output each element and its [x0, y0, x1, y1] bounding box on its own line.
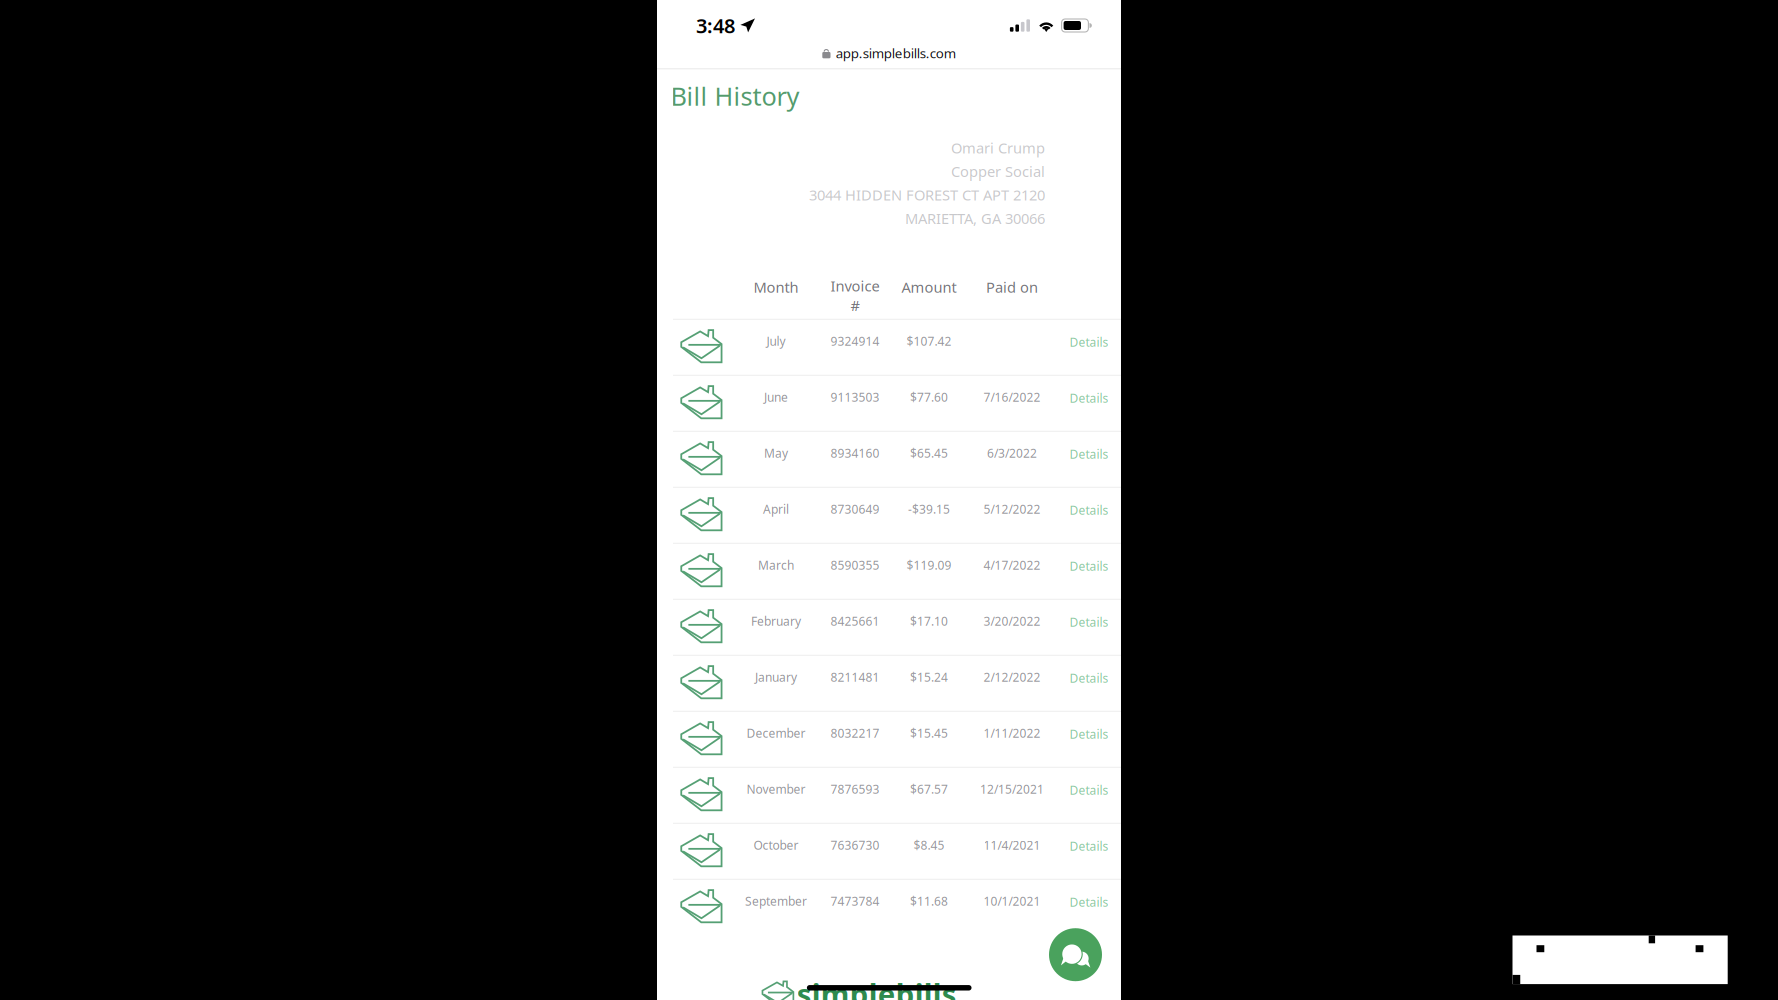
staticText: Details — [1069, 390, 1108, 406]
staticText: Bill History — [670, 79, 799, 113]
staticText: 3044 HIDDEN FOREST CT APT 2120 — [809, 185, 1045, 204]
staticText: $17.10 — [910, 613, 948, 629]
staticText: MARIETTA, GA 30066 — [905, 208, 1045, 228]
staticText: September — [745, 893, 807, 909]
staticText: 12/15/2021 — [980, 781, 1044, 797]
staticText: 3/20/2022 — [983, 613, 1040, 629]
staticText: Amount — [901, 277, 956, 297]
staticText: Details — [1069, 726, 1108, 742]
staticText: 2/12/2022 — [983, 669, 1040, 685]
button[interactable]: Open chat — [1049, 928, 1102, 981]
staticText: Details — [1069, 502, 1108, 518]
staticText: Paid on — [986, 277, 1038, 297]
button[interactable]: Details — [1057, 826, 1121, 866]
staticText: $119.09 — [906, 557, 951, 573]
staticText: December — [746, 725, 805, 741]
staticText: $65.45 — [910, 445, 948, 461]
staticText: Details — [1069, 670, 1108, 686]
button[interactable]: Details — [1057, 434, 1121, 474]
staticText: March — [758, 557, 794, 573]
staticText: app.simplebills.com — [836, 44, 956, 62]
staticText: $15.24 — [910, 669, 948, 685]
staticText: 10/1/2021 — [983, 893, 1040, 909]
staticText: 8425661 — [830, 613, 879, 629]
staticText: 11/4/2021 — [983, 837, 1040, 853]
button[interactable]: Details — [1057, 602, 1121, 642]
staticText: 3:48 — [696, 12, 735, 39]
staticText: simplebills — [797, 974, 957, 1000]
staticText: $107.42 — [906, 333, 951, 349]
staticText: 8032217 — [830, 725, 879, 741]
staticText: 7636730 — [830, 837, 879, 853]
staticText: 5/12/2022 — [983, 501, 1040, 517]
staticText: Omari Crump — [951, 138, 1045, 157]
staticText: $15.45 — [910, 725, 948, 741]
staticText: November — [746, 781, 805, 797]
staticText: -$39.15 — [908, 501, 950, 517]
staticText: February — [751, 613, 801, 629]
staticText: Copper Social — [951, 161, 1045, 181]
staticText: Month — [753, 277, 798, 297]
button[interactable]: Details — [1057, 770, 1121, 810]
staticText: 7473784 — [830, 893, 879, 909]
staticText: May — [764, 445, 788, 461]
staticText: 6/3/2022 — [987, 445, 1037, 461]
staticText: 8211481 — [830, 669, 879, 685]
staticText: 8730649 — [830, 501, 879, 517]
staticText: 9324914 — [830, 333, 879, 349]
button[interactable]: Details — [1057, 546, 1121, 586]
staticText: Details — [1069, 782, 1108, 798]
staticText: Invoice — [830, 276, 879, 295]
staticText: 4/17/2022 — [983, 557, 1040, 573]
staticText: Details — [1069, 894, 1108, 910]
button[interactable]: Details — [1057, 490, 1121, 530]
staticText: 7876593 — [830, 781, 879, 797]
staticText: 8934160 — [830, 445, 879, 461]
staticText: June — [764, 389, 788, 405]
staticText: January — [755, 669, 797, 685]
staticText: Details — [1069, 446, 1108, 462]
staticText: $77.60 — [910, 389, 948, 405]
button[interactable]: Details — [1057, 322, 1121, 362]
staticText: $8.45 — [913, 837, 944, 853]
staticText: Details — [1069, 334, 1108, 350]
staticText: April — [763, 501, 789, 517]
staticText: Details — [1069, 614, 1108, 630]
button[interactable]: Details — [1057, 882, 1121, 922]
staticText: July — [766, 333, 785, 349]
button[interactable]: app.simplebills.com — [657, 41, 1121, 65]
staticText: 8590355 — [830, 557, 879, 573]
button[interactable]: Details — [1057, 714, 1121, 754]
button[interactable]: Details — [1057, 378, 1121, 418]
staticText: $11.68 — [910, 893, 948, 909]
staticText: 7/16/2022 — [983, 389, 1040, 405]
staticText: 1/11/2022 — [983, 725, 1040, 741]
staticText: $67.57 — [910, 781, 948, 797]
button[interactable]: Details — [1057, 658, 1121, 698]
staticText: # — [850, 295, 859, 315]
staticText: October — [753, 837, 798, 853]
staticText: Details — [1069, 838, 1108, 854]
staticText: 9113503 — [830, 389, 879, 405]
staticText: Details — [1069, 558, 1108, 574]
